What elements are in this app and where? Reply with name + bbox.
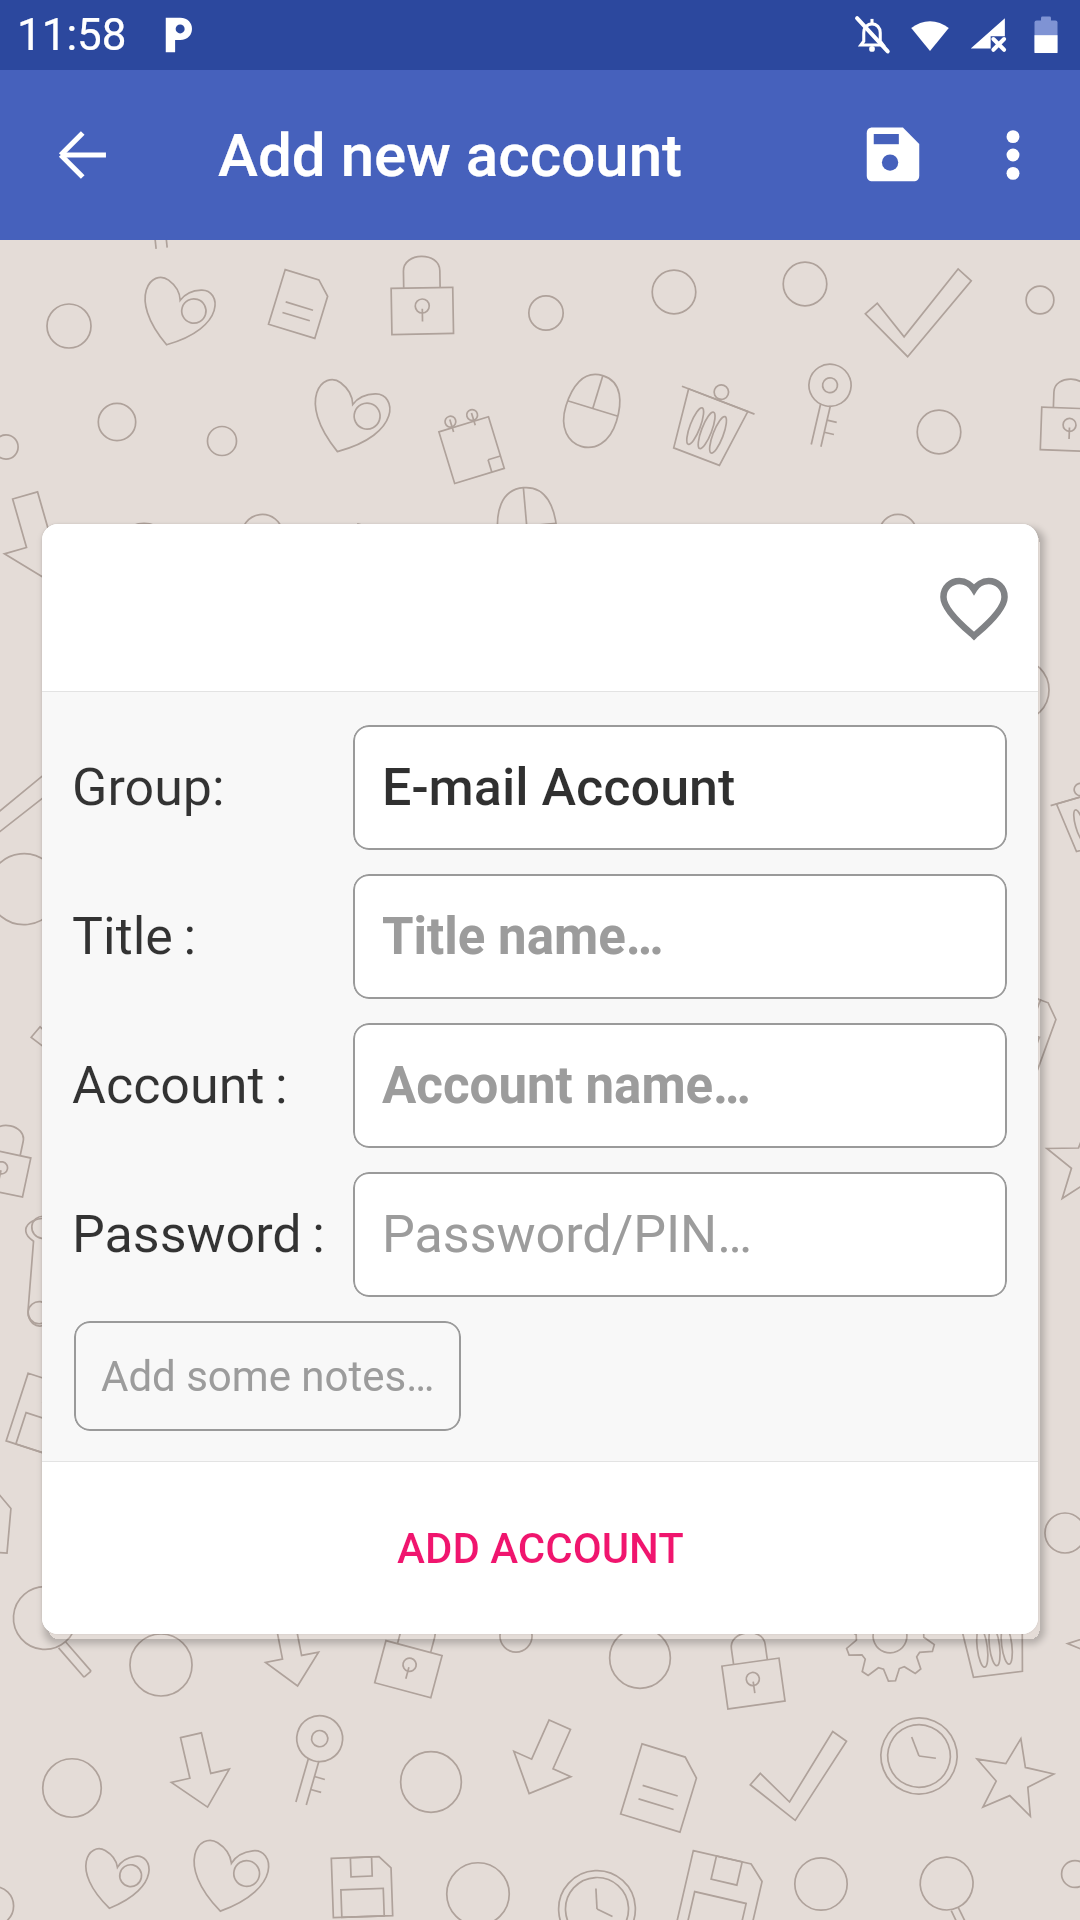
staticText: Account name… (382, 1056, 751, 1116)
button[interactable]: Account name… (353, 1023, 1007, 1148)
staticText: Title : (72, 906, 197, 967)
staticText: Title name… (382, 907, 664, 967)
button[interactable]: Password/PIN… (353, 1172, 1007, 1297)
staticText: 11:58 (17, 9, 127, 61)
button[interactable]: Favourite (919, 553, 1029, 663)
staticText: Add new account (218, 120, 682, 190)
staticText: Add some notes… (101, 1352, 435, 1401)
staticText: Account : (72, 1055, 288, 1116)
button[interactable]: Save (826, 88, 960, 222)
button[interactable]: Back (26, 97, 142, 213)
button[interactable]: Add some notes… (74, 1321, 461, 1431)
staticText: Password : (72, 1204, 325, 1265)
button[interactable]: More options (960, 102, 1066, 208)
button[interactable]: Title name… (353, 874, 1007, 999)
button[interactable]: E-mail Account (353, 725, 1007, 850)
staticText: Group: (72, 757, 225, 818)
staticText: ADD ACCOUNT (397, 1524, 684, 1573)
staticText: Password/PIN… (382, 1204, 752, 1265)
button[interactable]: ADD ACCOUNT (42, 1462, 1038, 1634)
staticText: E-mail Account (382, 757, 736, 818)
